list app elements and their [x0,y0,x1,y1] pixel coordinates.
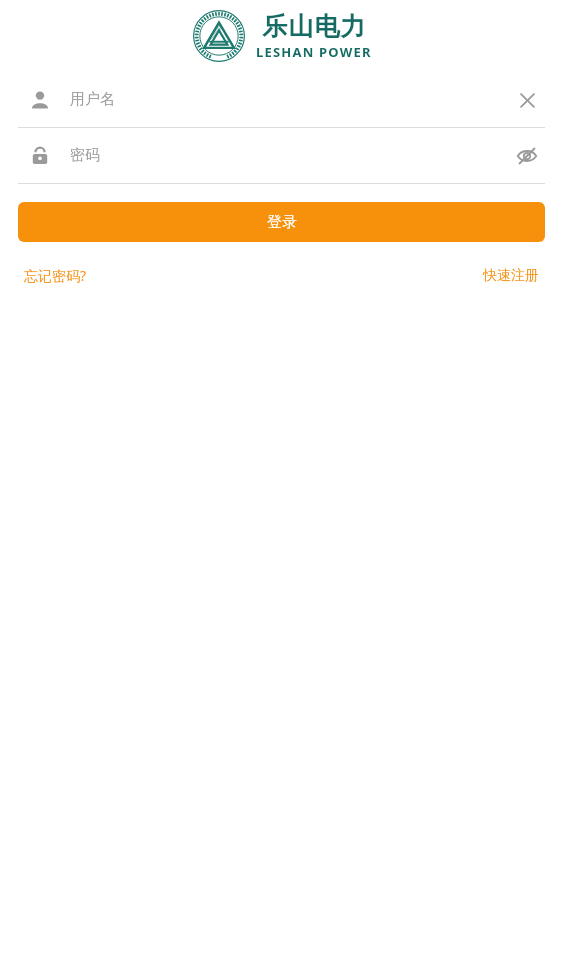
staticText: LESHAN POWER [256,43,372,61]
button[interactable]: 忘记密码? [18,262,93,289]
button[interactable]: 密码 [0,128,563,183]
staticText: 密码 [70,146,100,165]
staticText: 忘记密码? [24,266,87,285]
button[interactable]: 登录 [18,202,545,242]
button[interactable]: Show password [509,138,545,174]
staticText: 用户名 [70,90,115,109]
button[interactable]: 用户名 [0,72,563,127]
staticText: 快速注册 [483,267,539,285]
button[interactable]: 快速注册 [477,263,545,289]
button[interactable]: Clear username [509,82,545,118]
staticText: 登录 [267,213,297,232]
staticText: 乐山电力 [262,11,366,42]
